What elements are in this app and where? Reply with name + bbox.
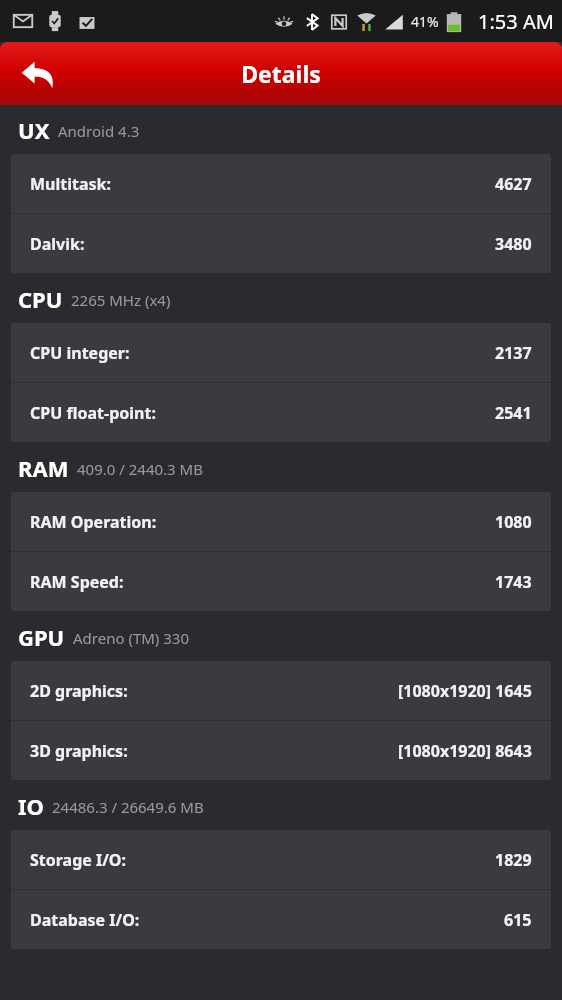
staticText: 3D graphics: xyxy=(30,740,128,762)
staticText: Multitask: xyxy=(30,173,111,195)
staticText: 2265 MHz (x4) xyxy=(71,290,171,310)
staticText: 41% xyxy=(411,12,439,31)
button[interactable]: 3D graphics: xyxy=(11,721,551,780)
staticText: 1080 xyxy=(495,511,532,533)
staticText: RAM xyxy=(18,453,69,483)
staticText: RAM Operation: xyxy=(30,511,157,533)
button[interactable]: 2D graphics: xyxy=(11,661,551,720)
staticText: RAM Speed: xyxy=(30,571,124,593)
staticText: 409.0 / 2440.3 MB xyxy=(77,459,203,479)
button[interactable]: CPU float-point: xyxy=(11,383,551,442)
staticText: CPU float-point: xyxy=(30,402,156,424)
staticText: Dalvik: xyxy=(30,233,85,255)
staticText: IO xyxy=(18,791,44,821)
button[interactable]: CPU integer: xyxy=(11,323,551,382)
staticText: Adreno (TM) 330 xyxy=(73,628,189,648)
staticText: 1829 xyxy=(495,849,532,871)
button[interactable]: RAM Operation: xyxy=(11,492,551,551)
staticText: CPU xyxy=(18,284,63,314)
button[interactable]: Database I/O: xyxy=(11,890,551,949)
staticText: 1743 xyxy=(495,571,532,593)
button[interactable]: RAM Speed: xyxy=(11,552,551,611)
staticText: 3480 xyxy=(495,233,532,255)
button[interactable]: Back xyxy=(10,46,66,102)
staticText: [1080x1920] 1645 xyxy=(398,680,532,702)
staticText: 2541 xyxy=(495,402,532,424)
staticText: Storage I/O: xyxy=(30,849,127,871)
staticText: UX xyxy=(18,115,50,145)
staticText: CPU integer: xyxy=(30,342,130,364)
staticText: Details xyxy=(241,58,321,89)
staticText: GPU xyxy=(18,622,65,652)
staticText: Database I/O: xyxy=(30,909,140,931)
staticText: 1:53 AM xyxy=(478,8,554,35)
button[interactable]: Dalvik: xyxy=(11,214,551,273)
button[interactable]: Storage I/O: xyxy=(11,830,551,889)
button[interactable]: Multitask: xyxy=(11,154,551,213)
staticText: Android 4.3 xyxy=(58,121,140,141)
staticText: 615 xyxy=(504,909,532,931)
staticText: 2D graphics: xyxy=(30,680,128,702)
staticText: 4627 xyxy=(495,173,532,195)
staticText: [1080x1920] 8643 xyxy=(398,740,532,762)
staticText: 24486.3 / 26649.6 MB xyxy=(52,797,204,817)
staticText: 2137 xyxy=(495,342,532,364)
